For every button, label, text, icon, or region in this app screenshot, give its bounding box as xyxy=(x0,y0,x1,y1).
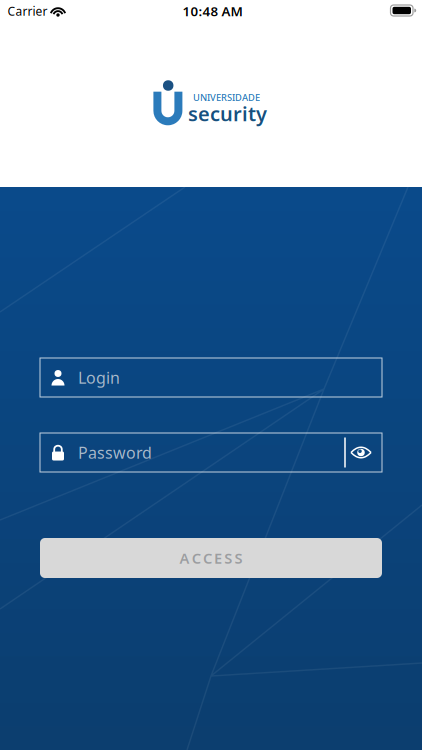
staticText: Carrier xyxy=(7,3,47,19)
staticText: C xyxy=(192,548,201,568)
button[interactable]: Password xyxy=(40,433,382,472)
staticText: A xyxy=(179,548,189,568)
staticText: S xyxy=(224,548,232,568)
button[interactable]: Login xyxy=(40,358,382,397)
staticText: Password xyxy=(78,442,152,463)
staticText: 10:48 AM xyxy=(182,2,242,20)
staticText: Login xyxy=(78,367,120,388)
staticText: C xyxy=(203,548,212,568)
button[interactable]: A xyxy=(40,538,382,578)
staticText: E xyxy=(214,548,222,568)
staticText: security xyxy=(188,100,267,127)
staticText: S xyxy=(234,548,242,568)
staticText: UNIVERSIDADE xyxy=(193,91,260,103)
